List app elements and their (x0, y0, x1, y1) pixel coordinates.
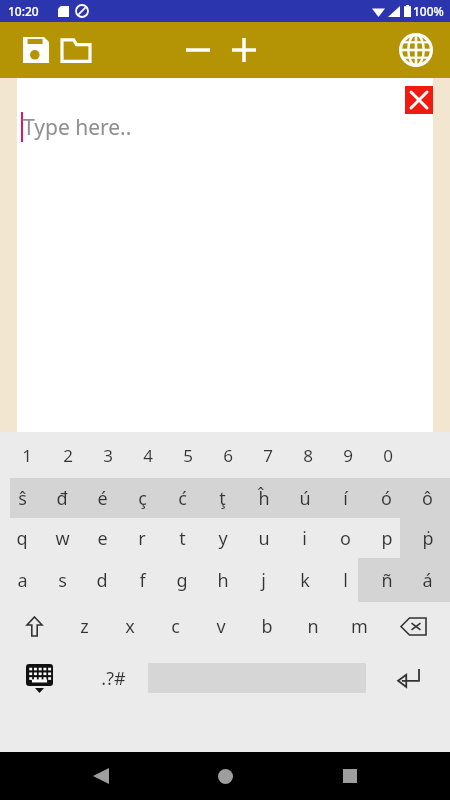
button[interactable]: Back (77, 752, 125, 800)
button[interactable]: c (152, 602, 198, 650)
staticText: m (351, 614, 368, 639)
staticText: 5 (183, 444, 193, 467)
button[interactable]: 2 (47, 432, 88, 478)
button[interactable]: a (2, 558, 42, 602)
staticText: f (139, 568, 146, 593)
button[interactable]: Decrease text size (176, 28, 220, 72)
button[interactable]: g (162, 558, 202, 602)
staticText: v (216, 614, 226, 639)
staticText: k (300, 568, 310, 593)
button[interactable]: 3 (88, 432, 128, 478)
button[interactable]: n (290, 602, 336, 650)
button[interactable]: á (407, 558, 448, 602)
button[interactable]: d (82, 558, 122, 602)
button[interactable]: 4 (128, 432, 168, 478)
button[interactable]: 5 (168, 432, 208, 478)
staticText: í (343, 486, 348, 511)
button[interactable]: l (325, 558, 366, 602)
button[interactable]: v (198, 602, 244, 650)
button[interactable]: t (162, 518, 202, 558)
button[interactable]: z (62, 602, 107, 650)
button[interactable]: Increase text size (222, 28, 266, 72)
staticText: w (55, 526, 70, 551)
staticText: h (217, 568, 229, 593)
button[interactable]: Backspace (382, 602, 444, 650)
button[interactable]: k (284, 558, 325, 602)
staticText: b (261, 614, 273, 639)
button[interactable]: e (82, 518, 122, 558)
button[interactable]: Open (58, 32, 94, 68)
button[interactable]: 9 (328, 432, 368, 478)
button[interactable]: Save (18, 32, 54, 68)
button[interactable]: Shift (6, 602, 62, 650)
staticText: ŝ (18, 486, 27, 511)
button[interactable]: ĥ (243, 478, 284, 518)
button[interactable]: đ (42, 478, 82, 518)
staticText: 100% (413, 3, 444, 19)
staticText: r (138, 526, 146, 551)
button[interactable]: m (336, 602, 382, 650)
button[interactable]: j (243, 558, 284, 602)
button[interactable]: i (284, 518, 325, 558)
staticText: z (80, 614, 89, 639)
button[interactable]: ţ (202, 478, 243, 518)
button[interactable]: ć (162, 478, 202, 518)
staticText: q (16, 526, 28, 551)
button[interactable]: h (202, 558, 243, 602)
button[interactable]: ô (407, 478, 448, 518)
button[interactable]: w (42, 518, 82, 558)
button[interactable]: ŝ (2, 478, 42, 518)
staticText: g (176, 568, 188, 593)
button[interactable]: ú (284, 478, 325, 518)
button[interactable]: b (244, 602, 290, 650)
button[interactable]: ñ (366, 558, 407, 602)
button[interactable]: r (122, 518, 162, 558)
button[interactable]: é (82, 478, 122, 518)
button[interactable]: í (325, 478, 366, 518)
staticText: ç (138, 486, 147, 511)
button[interactable]: ṗ (407, 518, 448, 558)
button[interactable]: 8 (288, 432, 328, 478)
staticText: n (307, 614, 319, 639)
staticText: á (422, 568, 433, 593)
button[interactable]: 1 (6, 432, 47, 478)
staticText: ô (422, 486, 433, 511)
staticText: 6 (223, 444, 233, 467)
staticText: 9 (343, 444, 353, 467)
button[interactable]: ó (366, 478, 407, 518)
staticText: ñ (381, 568, 393, 593)
button[interactable]: 0 (368, 432, 408, 478)
button[interactable]: Home (201, 752, 249, 800)
button[interactable]: 7 (248, 432, 288, 478)
button[interactable]: Language (394, 28, 438, 72)
staticText: o (340, 526, 351, 551)
button[interactable]: q (2, 518, 42, 558)
staticText: a (17, 568, 28, 593)
button[interactable]: x (107, 602, 152, 650)
button[interactable]: Enter (366, 650, 450, 706)
button[interactable]: .?# (78, 650, 148, 706)
staticText: 0 (383, 444, 393, 467)
button[interactable]: Recents (326, 752, 374, 800)
staticText: é (97, 486, 108, 511)
button[interactable]: s (42, 558, 82, 602)
staticText: ĥ (258, 486, 270, 511)
staticText: .?# (101, 666, 126, 691)
button[interactable]: y (202, 518, 243, 558)
button[interactable]: Switch keyboard (0, 650, 78, 706)
staticText: 3 (103, 444, 113, 467)
button[interactable]: p (366, 518, 407, 558)
button[interactable]: Close (405, 86, 433, 114)
button[interactable]: 6 (208, 432, 248, 478)
staticText: ţ (219, 486, 226, 511)
staticText: Type here.. (23, 113, 132, 142)
staticText: 4 (143, 444, 153, 467)
staticText: c (171, 614, 180, 639)
staticText: 2 (63, 444, 73, 467)
button[interactable]: f (122, 558, 162, 602)
button[interactable]: o (325, 518, 366, 558)
button[interactable]: u (243, 518, 284, 558)
button[interactable]: ç (122, 478, 162, 518)
staticText: j (261, 568, 266, 593)
